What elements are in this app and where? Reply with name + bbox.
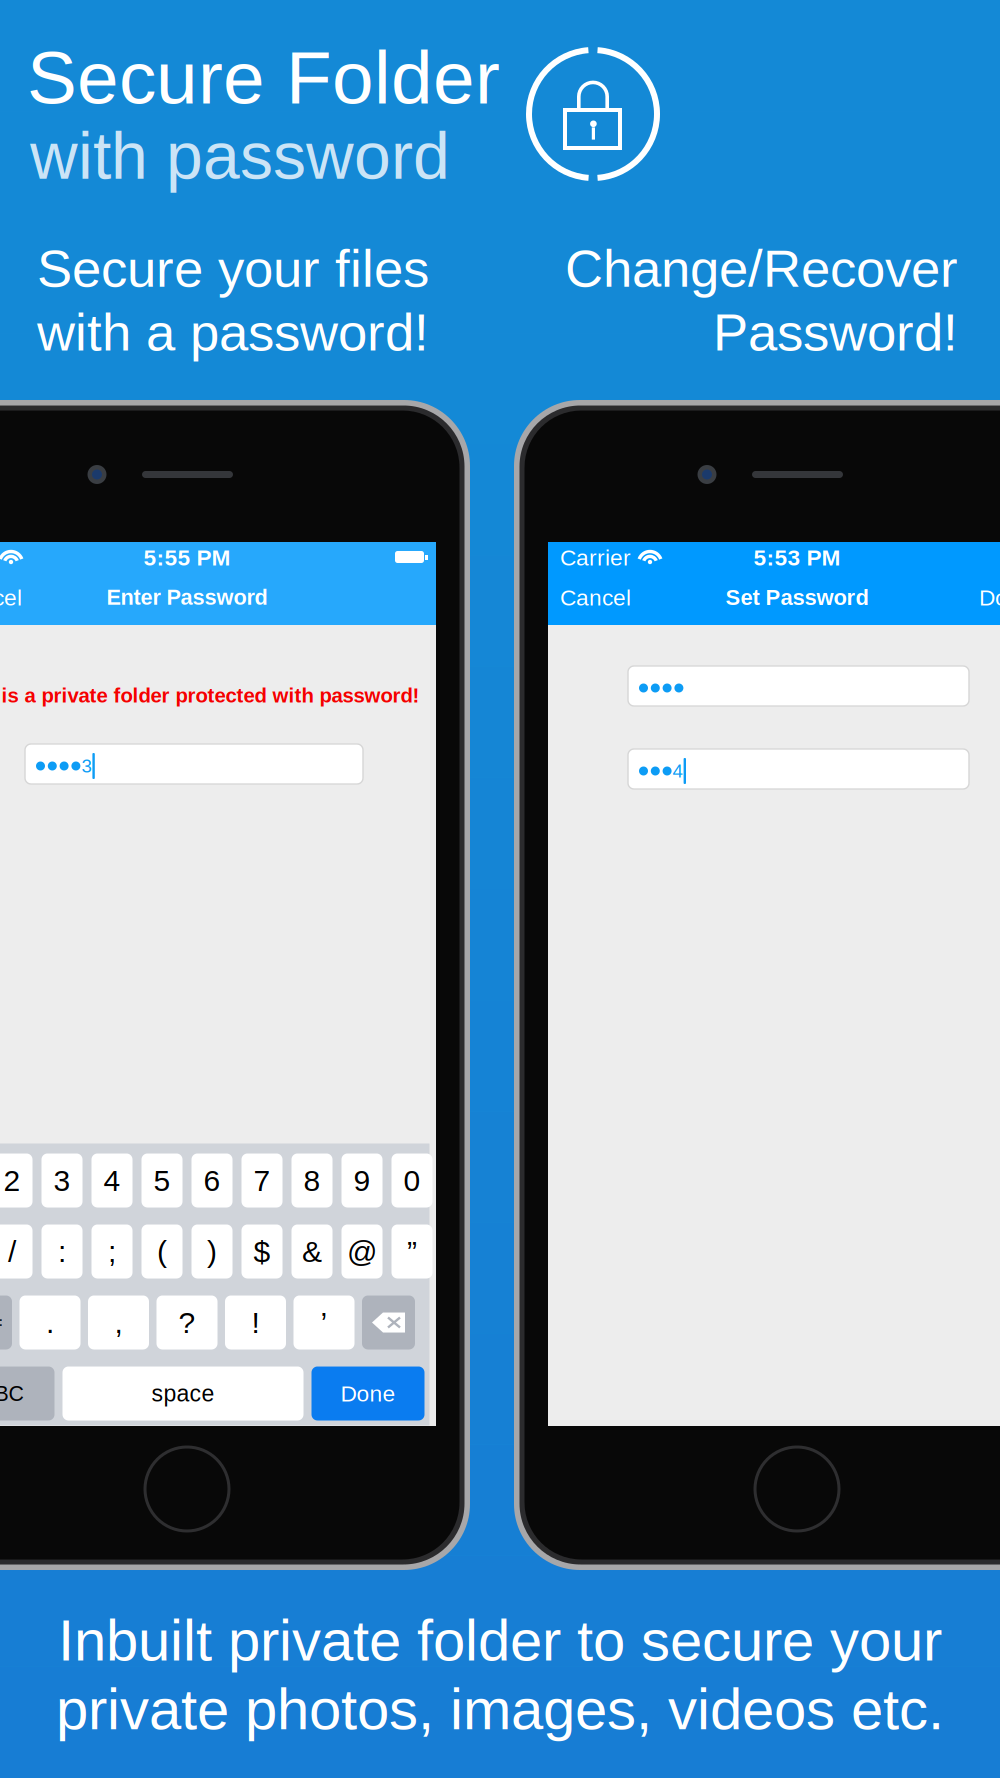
staticText: , bbox=[114, 1306, 122, 1339]
button[interactable]: & bbox=[291, 1224, 332, 1278]
staticText: #+= bbox=[0, 1311, 3, 1334]
button[interactable]: ABC bbox=[0, 1366, 54, 1420]
staticText: . bbox=[46, 1306, 54, 1339]
staticText: & bbox=[302, 1235, 322, 1268]
staticText: 0 bbox=[403, 1164, 420, 1197]
button[interactable]: 5 bbox=[141, 1153, 182, 1207]
staticText: Inbuilt private folder to secure your bbox=[58, 1608, 942, 1673]
staticText: 3 bbox=[53, 1164, 70, 1197]
staticText: 5 bbox=[153, 1164, 170, 1197]
staticText: : bbox=[58, 1235, 66, 1268]
staticText: 2 bbox=[3, 1164, 20, 1197]
staticText: Secure your files bbox=[37, 239, 429, 298]
staticText: / bbox=[8, 1235, 16, 1268]
staticText: @ bbox=[347, 1235, 377, 1268]
button[interactable]: ! bbox=[225, 1295, 286, 1349]
staticText: Cancel bbox=[0, 585, 22, 610]
staticText: 5:53 PM bbox=[753, 545, 840, 570]
staticText: with a password! bbox=[37, 303, 429, 362]
button[interactable]: 6 bbox=[191, 1153, 232, 1207]
button[interactable]: #+= bbox=[0, 1295, 12, 1349]
button[interactable]: , bbox=[88, 1295, 149, 1349]
staticText: ( bbox=[157, 1235, 167, 1268]
button[interactable]: ” bbox=[391, 1224, 432, 1278]
staticText: ? bbox=[178, 1306, 195, 1339]
staticText: Done bbox=[340, 1381, 395, 1406]
staticText: 9 bbox=[353, 1164, 370, 1197]
staticText: Enter Password bbox=[106, 585, 267, 609]
staticText: private photos, images, videos etc. bbox=[56, 1677, 944, 1742]
button[interactable]: / bbox=[0, 1224, 32, 1278]
button[interactable]: ( bbox=[141, 1224, 182, 1278]
button[interactable]: 3 bbox=[41, 1153, 82, 1207]
button[interactable]: ? bbox=[156, 1295, 217, 1349]
staticText: Set Password bbox=[725, 585, 868, 610]
staticText: ’ bbox=[320, 1306, 327, 1339]
staticText: ” bbox=[407, 1235, 417, 1268]
button[interactable]: . bbox=[19, 1295, 80, 1349]
button[interactable]: Done bbox=[311, 1366, 424, 1420]
staticText: Change/Recover bbox=[565, 239, 958, 298]
button[interactable]: 7 bbox=[241, 1153, 282, 1207]
button[interactable]: Done bbox=[548, 576, 1000, 601]
staticText: 5:55 PM bbox=[143, 545, 230, 570]
button[interactable]: : bbox=[41, 1224, 82, 1278]
staticText: Carrier bbox=[560, 545, 631, 570]
button[interactable]: Cancel bbox=[0, 576, 9, 601]
staticText: 3 bbox=[81, 756, 91, 776]
staticText: 4 bbox=[103, 1164, 120, 1197]
staticText: This is a private folder protected with … bbox=[0, 684, 419, 707]
staticText: with password bbox=[30, 119, 450, 193]
staticText: ABC bbox=[0, 1382, 23, 1405]
button[interactable]: ’ bbox=[293, 1295, 354, 1349]
button[interactable]: Cancel bbox=[548, 576, 619, 601]
staticText: Secure Folder bbox=[27, 36, 500, 119]
button[interactable]: 8 bbox=[291, 1153, 332, 1207]
staticText: Cancel bbox=[560, 585, 631, 610]
staticText: 4 bbox=[673, 761, 683, 781]
button[interactable]: 0 bbox=[391, 1153, 432, 1207]
staticText: Password! bbox=[713, 303, 958, 362]
staticText: ) bbox=[207, 1235, 217, 1268]
staticText: 6 bbox=[203, 1164, 220, 1197]
button[interactable]: 4 bbox=[91, 1153, 132, 1207]
staticText: 7 bbox=[253, 1164, 270, 1197]
staticText: ; bbox=[108, 1235, 116, 1268]
button[interactable]: space bbox=[62, 1366, 303, 1420]
button[interactable]: Delete bbox=[362, 1295, 415, 1349]
button[interactable]: @ bbox=[341, 1224, 382, 1278]
button[interactable]: $ bbox=[241, 1224, 282, 1278]
button[interactable]: ; bbox=[91, 1224, 132, 1278]
button[interactable]: 9 bbox=[341, 1153, 382, 1207]
staticText: Done bbox=[979, 585, 1000, 610]
staticText: ! bbox=[251, 1306, 259, 1339]
staticText: 8 bbox=[303, 1164, 320, 1197]
button[interactable]: ) bbox=[191, 1224, 232, 1278]
button[interactable]: 2 bbox=[0, 1153, 32, 1207]
staticText: space bbox=[151, 1381, 214, 1406]
staticText: $ bbox=[253, 1235, 270, 1268]
